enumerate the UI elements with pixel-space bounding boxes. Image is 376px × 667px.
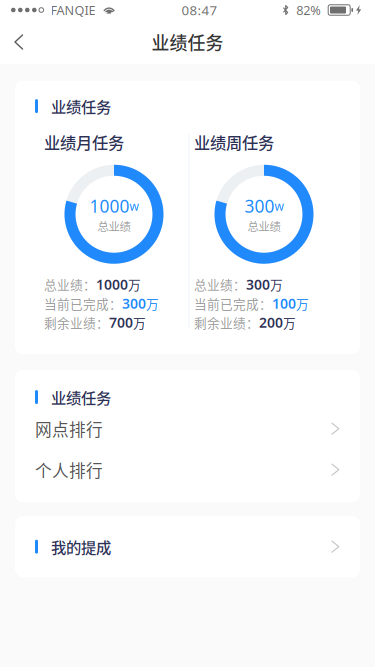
staticText: 1000 <box>89 194 129 218</box>
staticText: 网点排行 <box>35 417 103 441</box>
staticText: 万 <box>283 313 296 332</box>
button[interactable]: 网点排行 <box>15 408 360 449</box>
staticText: 82% <box>296 1 321 19</box>
staticText: 700 <box>109 313 133 332</box>
staticText: 我的提成 <box>51 536 111 558</box>
staticText: FANQIE <box>51 1 96 19</box>
staticText: 万 <box>146 294 159 312</box>
staticText: 万 <box>296 294 309 312</box>
staticText: 300 <box>244 194 274 218</box>
staticText: 剩余业绩： <box>194 313 259 332</box>
staticText: 200 <box>259 313 283 332</box>
button[interactable]: 我的提成 <box>15 516 360 577</box>
staticText: 业绩任务 <box>151 29 223 55</box>
staticText: 当前已完成： <box>194 294 272 312</box>
staticText: 总业绩 <box>247 218 280 234</box>
staticText: 业绩月任务 <box>44 130 124 154</box>
staticText: 业绩任务 <box>51 95 111 117</box>
staticText: w <box>274 198 283 214</box>
staticText: 万 <box>133 313 146 332</box>
staticText: 08:47 <box>181 1 217 19</box>
staticText: 300 <box>122 294 146 313</box>
staticText: 万 <box>270 275 283 293</box>
button[interactable]: 个人排行 <box>15 449 360 490</box>
button[interactable]: Back <box>0 20 38 64</box>
staticText: 个人排行 <box>35 458 103 482</box>
staticText: 1000 <box>96 275 128 294</box>
staticText: 剩余业绩： <box>44 313 109 332</box>
staticText: 业绩周任务 <box>194 130 274 154</box>
staticText: 总业绩 <box>97 218 130 234</box>
staticText: 业绩任务 <box>51 386 111 408</box>
staticText: 万 <box>128 275 141 293</box>
staticText: 100 <box>272 294 296 313</box>
staticText: 当前已完成： <box>44 294 122 312</box>
staticText: w <box>129 198 138 214</box>
staticText: 总业绩： <box>44 275 96 293</box>
staticText: 总业绩： <box>194 275 246 293</box>
staticText: 300 <box>246 275 270 294</box>
